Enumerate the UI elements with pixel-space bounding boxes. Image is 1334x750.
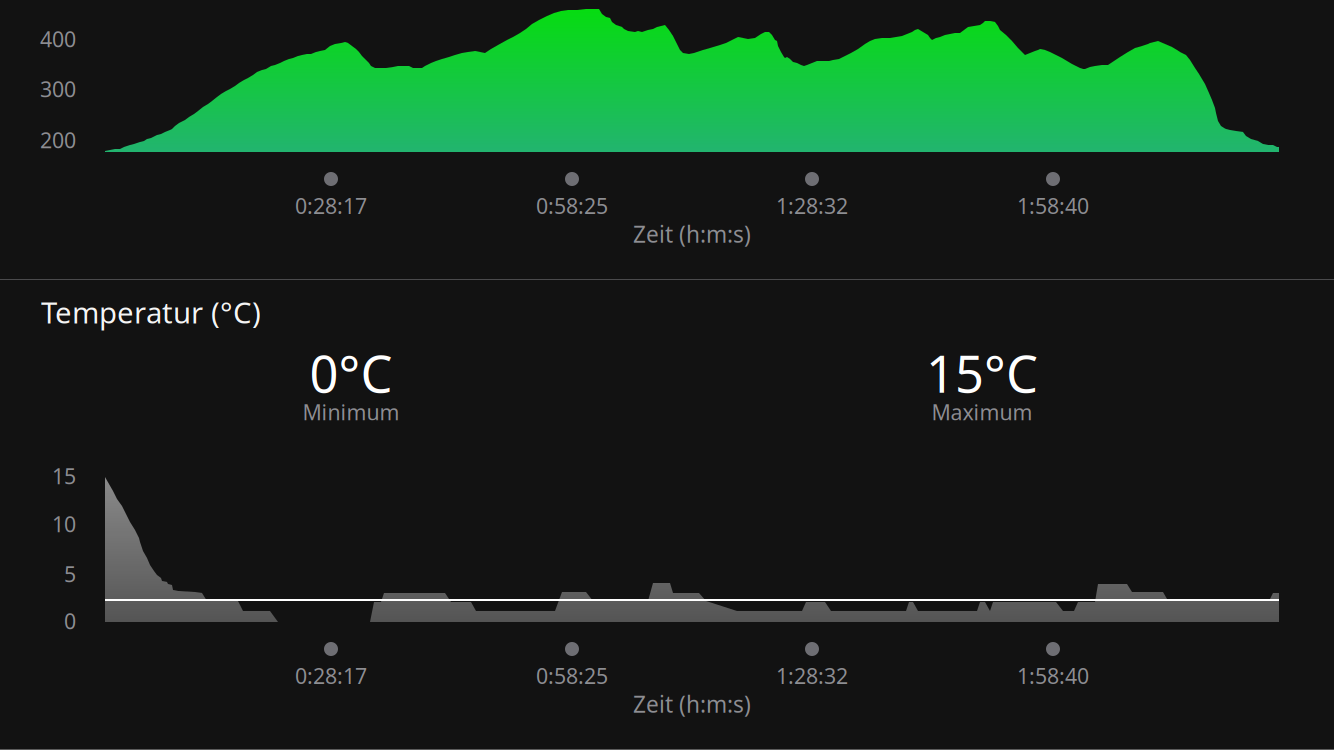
staticText: 400 <box>40 25 76 53</box>
button[interactable]: 1:58:40 <box>998 172 1108 220</box>
button[interactable]: 0:28:17 <box>276 642 386 690</box>
button[interactable]: 0°C <box>191 345 511 437</box>
button[interactable]: 0:58:25 <box>517 642 627 690</box>
staticText: 0:28:17 <box>295 192 367 220</box>
staticText: 1:58:40 <box>1017 192 1089 220</box>
staticText: 1:28:32 <box>776 662 848 690</box>
staticText: 10 <box>52 510 76 538</box>
staticText: Zeit (h:m:s) <box>633 689 751 719</box>
staticText: Zeit (h:m:s) <box>633 219 751 249</box>
staticText: 5 <box>64 560 76 588</box>
staticText: Maximum <box>931 398 1032 426</box>
button[interactable]: 1:28:32 <box>757 642 867 690</box>
staticText: 1:58:40 <box>1017 662 1089 690</box>
staticText: 0°C <box>309 339 392 407</box>
button[interactable]: 15°C <box>822 345 1142 437</box>
staticText: 1:28:32 <box>776 192 848 220</box>
button[interactable]: 1:58:40 <box>998 642 1108 690</box>
staticText: 0 <box>64 607 76 635</box>
button[interactable]: 0:28:17 <box>276 172 386 220</box>
staticText: 200 <box>40 126 76 154</box>
button[interactable]: 0:58:25 <box>517 172 627 220</box>
staticText: Temperatur (°C) <box>41 292 261 331</box>
staticText: Minimum <box>302 398 399 426</box>
staticText: 15 <box>52 462 76 490</box>
staticText: 0:58:25 <box>536 662 608 690</box>
staticText: 0:58:25 <box>536 192 608 220</box>
staticText: 300 <box>40 75 76 103</box>
staticText: 15°C <box>926 339 1038 407</box>
button[interactable]: 1:28:32 <box>757 172 867 220</box>
staticText: 0:28:17 <box>295 662 367 690</box>
